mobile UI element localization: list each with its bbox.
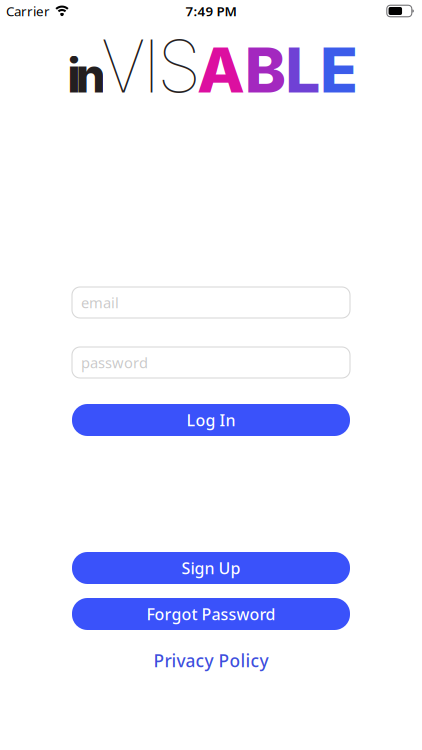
button[interactable]: Sign Up: [72, 552, 350, 584]
staticText: password: [81, 353, 148, 372]
staticText: email: [81, 293, 119, 312]
button[interactable]: Privacy Policy: [153, 649, 268, 672]
button[interactable]: Log In: [72, 404, 350, 436]
staticText: ABLE: [197, 33, 358, 107]
staticText: Forgot Password: [146, 603, 275, 625]
staticText: inVIS: [68, 24, 201, 109]
staticText: Privacy Policy: [153, 649, 268, 672]
staticText: Sign Up: [181, 557, 240, 579]
staticText: 7:49 PM: [185, 2, 236, 20]
button[interactable]: Forgot Password: [72, 598, 350, 630]
staticText: Log In: [186, 409, 235, 431]
staticText: Carrier: [6, 2, 50, 20]
